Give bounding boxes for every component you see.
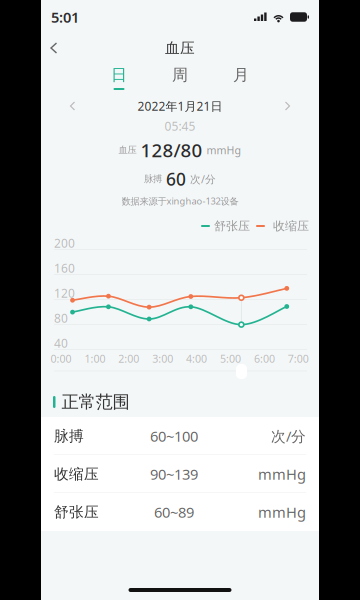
staticText: mmHg: [258, 502, 306, 522]
staticText: 次/分: [190, 172, 216, 186]
staticText: 5:01: [51, 7, 79, 27]
staticText: 次/分: [271, 426, 306, 446]
staticText: 5:00: [220, 351, 241, 366]
staticText: 0:00: [50, 351, 71, 366]
staticText: 120: [54, 285, 75, 301]
staticText: 血压: [118, 144, 136, 156]
staticText: 脉搏: [144, 173, 162, 185]
staticText: mmHg: [258, 464, 306, 484]
staticText: 40: [54, 335, 68, 351]
staticText: 80: [54, 310, 68, 326]
staticText: 收缩压: [54, 465, 99, 483]
staticText: 128/80: [140, 138, 202, 162]
staticText: 数据来源于xinghao-132设备: [121, 195, 238, 207]
staticText: 周: [172, 65, 188, 85]
button[interactable]: 月: [210, 66, 271, 96]
staticText: 160: [54, 260, 75, 276]
staticText: 脉搏: [54, 427, 84, 445]
button[interactable]: Back: [41, 33, 67, 62]
staticText: mmHg: [206, 143, 241, 157]
staticText: 3:00: [152, 351, 173, 366]
staticText: 60: [166, 167, 186, 190]
staticText: 日: [111, 65, 127, 85]
staticText: 舒张压: [210, 219, 250, 233]
button[interactable]: Next day: [276, 93, 299, 119]
button[interactable]: Previous day: [61, 93, 84, 119]
staticText: 60~100: [150, 426, 198, 446]
staticText: 05:45: [164, 118, 195, 134]
staticText: 7:00: [288, 351, 309, 366]
staticText: 6:00: [254, 351, 275, 366]
button[interactable]: 日: [88, 66, 149, 96]
staticText: 200: [54, 235, 75, 251]
button[interactable]: 周: [149, 66, 210, 96]
staticText: 月: [233, 65, 249, 85]
staticText: 60~89: [154, 502, 194, 522]
staticText: 90~139: [150, 464, 198, 484]
staticText: 血压: [165, 39, 195, 57]
staticText: 2022年1月21日: [137, 98, 222, 114]
staticText: 舒张压: [54, 503, 99, 521]
staticText: 收缩压: [265, 219, 309, 233]
staticText: 2:00: [118, 351, 139, 366]
staticText: 4:00: [186, 351, 207, 366]
staticText: 1:00: [84, 351, 105, 366]
staticText: 正常范围: [61, 391, 129, 413]
